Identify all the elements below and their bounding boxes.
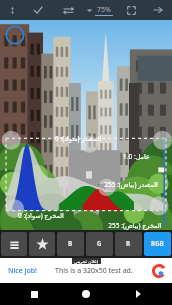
staticText: G xyxy=(97,239,102,249)
staticText: R xyxy=(126,239,131,249)
button[interactable]: Zoom level 75 percent xyxy=(86,2,113,18)
button[interactable] xyxy=(1,232,27,256)
button[interactable]: B xyxy=(57,232,84,256)
button[interactable] xyxy=(29,232,55,256)
staticText: This is a 320x50 test ad. xyxy=(55,266,133,276)
staticText: Nice job! xyxy=(8,266,38,276)
button[interactable]: G xyxy=(86,232,113,256)
button[interactable]: إعلان تجريبي xyxy=(0,258,172,283)
staticText: عامل: 1.0 xyxy=(123,152,150,161)
button[interactable]: Compare before and after xyxy=(4,2,20,18)
staticText: المخرج (سواد): 0 xyxy=(18,211,64,220)
staticText: المصدر (بياض): 255 xyxy=(104,180,158,189)
staticText: المخرج (بياض): 255 xyxy=(108,221,162,230)
button[interactable]: Home xyxy=(77,285,95,303)
staticText: المصدر (سواد): 0 xyxy=(55,134,101,143)
button[interactable]: Next xyxy=(149,1,167,19)
button[interactable]: RGB xyxy=(144,232,171,256)
button[interactable]: R xyxy=(115,232,142,256)
button[interactable]: Fit to screen xyxy=(123,2,139,18)
button[interactable]: Swap xyxy=(60,2,76,18)
staticText: B xyxy=(68,239,73,249)
staticText: 75% xyxy=(97,5,111,15)
staticText: إعلان تجريبي xyxy=(74,258,99,264)
button[interactable]: Recent apps xyxy=(25,285,43,303)
button[interactable]: Back xyxy=(129,285,147,303)
staticText: RGB xyxy=(151,239,164,249)
button[interactable]: Apply xyxy=(30,2,46,18)
